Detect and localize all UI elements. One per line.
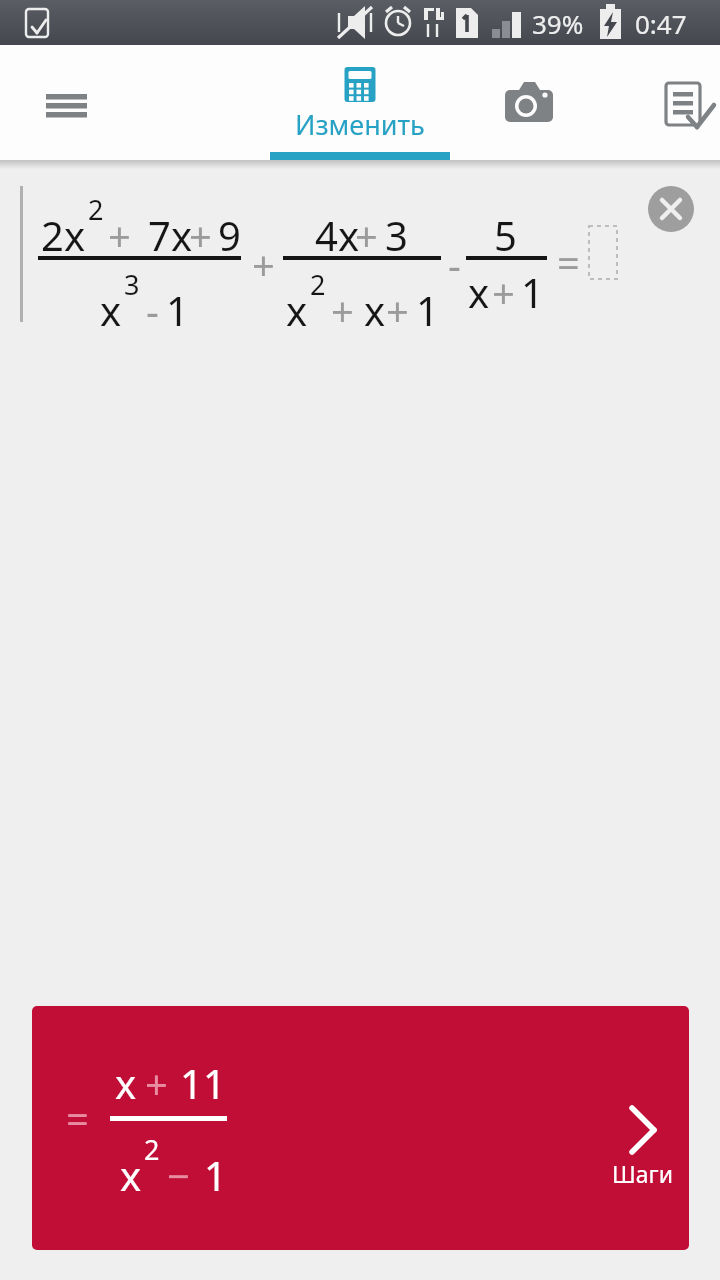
- staticText: 1: [521, 265, 544, 319]
- staticText: +: [108, 208, 131, 262]
- staticText: +: [492, 265, 515, 319]
- staticText: x: [100, 283, 122, 337]
- staticText: +: [145, 1056, 168, 1110]
- button[interactable]: Изменить: [270, 45, 450, 160]
- button[interactable]: =: [32, 1006, 689, 1250]
- staticText: x: [364, 283, 386, 337]
- staticText: x: [115, 1056, 137, 1110]
- staticText: 1: [204, 1148, 227, 1202]
- button[interactable]: Camera: [488, 71, 568, 133]
- staticText: =: [557, 235, 580, 289]
- staticText: +: [331, 283, 354, 337]
- staticText: =: [66, 1091, 89, 1145]
- staticText: Шаги: [612, 1158, 673, 1189]
- staticText: 0:47: [635, 6, 687, 41]
- staticText: x: [468, 265, 490, 319]
- staticText: +: [252, 237, 275, 291]
- staticText: 4x: [315, 208, 360, 262]
- staticText: x: [286, 283, 308, 337]
- staticText: +: [355, 208, 378, 262]
- staticText: x: [120, 1148, 142, 1202]
- staticText: +: [386, 283, 409, 337]
- staticText: 1: [166, 283, 189, 337]
- staticText: -: [448, 237, 461, 291]
- staticText: 5: [494, 208, 517, 262]
- staticText: 2x: [41, 208, 86, 262]
- staticText: 3: [385, 208, 408, 262]
- staticText: +: [189, 208, 212, 262]
- staticText: 7x: [148, 208, 193, 262]
- staticText: 1: [416, 283, 439, 337]
- staticText: Изменить: [295, 106, 425, 143]
- staticText: 2: [310, 266, 326, 303]
- button[interactable]: Solutions: [650, 67, 720, 137]
- staticText: 9: [218, 208, 241, 262]
- staticText: 3: [124, 266, 140, 303]
- staticText: −: [167, 1148, 190, 1202]
- staticText: 11: [180, 1056, 226, 1110]
- staticText: 39%: [532, 6, 584, 41]
- button[interactable]: Clear: [648, 186, 694, 232]
- staticText: 2: [88, 191, 104, 228]
- staticText: 2: [144, 1131, 160, 1168]
- staticText: -: [146, 283, 159, 337]
- button[interactable]: Menu: [26, 70, 106, 135]
